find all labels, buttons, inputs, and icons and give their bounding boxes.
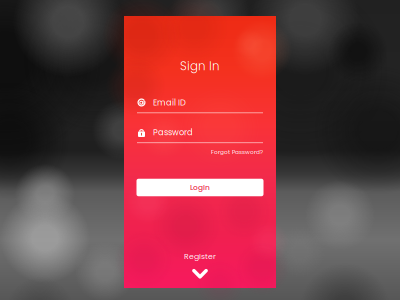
button[interactable]: Password [124,119,276,145]
staticText: Register [184,251,216,262]
button[interactable]: Login [136,179,263,196]
button[interactable]: Email ID [124,89,276,115]
staticText: Sign In [180,58,220,74]
button[interactable]: Forgot Password? [137,146,263,158]
staticText: Forgot Password? [211,148,263,156]
button[interactable]: Register [184,251,216,279]
staticText: Password [153,127,193,138]
staticText: Email ID [153,97,186,108]
staticText: Login [190,182,210,193]
